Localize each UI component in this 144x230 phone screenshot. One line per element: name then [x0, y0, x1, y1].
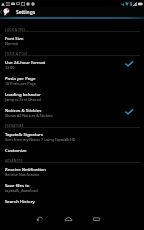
button[interactable]: Recent apps [90, 213, 102, 225]
button[interactable]: Use 24-hour format [0, 56, 144, 72]
button[interactable]: Save files to [0, 179, 144, 195]
staticText: Settings [16, 9, 36, 16]
button[interactable]: Navigate up [0, 7, 144, 17]
button[interactable]: Customize [0, 144, 144, 155]
button[interactable]: Home [62, 213, 74, 225]
staticText: Customize [5, 147, 27, 153]
staticText: Posts per Page [5, 75, 36, 81]
staticText: TOPIC & POST [5, 52, 28, 56]
staticText: 10 Posts per Page [5, 81, 36, 86]
staticText: tapatalk_download [5, 188, 38, 193]
button[interactable]: Notices & Stickies [0, 104, 144, 120]
button[interactable]: Search History [0, 195, 144, 206]
staticText: Sent from my Nexus 7 using Tapatalk HD [5, 137, 76, 142]
button[interactable]: Font Size [0, 32, 144, 48]
staticText: Tapatalk Signature [5, 131, 44, 137]
staticText: Receive Notification [5, 166, 46, 172]
staticText: SIGNATURE [5, 124, 24, 128]
staticText: Search History [5, 198, 35, 204]
button[interactable]: Posts per Page [0, 72, 144, 88]
staticText: Shows All Notices & Stickies [5, 113, 53, 118]
button[interactable]: Tapatalk Signature [0, 128, 144, 144]
staticText: Receive Notification [5, 172, 40, 177]
staticText: Jump to First Unread [5, 97, 41, 102]
staticText: Use 24-hour format [5, 59, 46, 65]
staticText: Normal [5, 41, 19, 46]
staticText: ADVANCED [5, 159, 23, 163]
staticText: Notices & Stickies [5, 107, 42, 113]
staticText: LOOK & FEEL [5, 28, 26, 32]
button[interactable]: Loading behavior [0, 88, 144, 104]
staticText: Loading behavior [5, 91, 41, 97]
staticText: Save files to [5, 182, 30, 188]
button[interactable]: Receive Notification [0, 163, 144, 179]
staticText: 13:00 [5, 65, 15, 70]
button[interactable]: Back [33, 213, 45, 225]
staticText: Font Size [5, 35, 24, 41]
